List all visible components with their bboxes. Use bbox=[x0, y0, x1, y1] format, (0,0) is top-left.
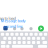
button[interactable]: Key bbox=[44, 33, 47, 36]
button[interactable]: Key bbox=[22, 41, 26, 44]
button[interactable]: Delete bbox=[42, 41, 47, 44]
button[interactable]: Key bbox=[18, 37, 21, 40]
button[interactable]: Key bbox=[15, 33, 18, 36]
button[interactable]: Key bbox=[25, 33, 28, 36]
button[interactable]: Camera bbox=[13, 27, 16, 30]
button[interactable]: Key bbox=[22, 37, 26, 40]
button[interactable]: Numbers bbox=[1, 45, 5, 48]
button[interactable]: Key bbox=[39, 33, 42, 36]
button[interactable]: Key bbox=[8, 41, 11, 44]
button[interactable]: Key bbox=[13, 37, 16, 40]
button[interactable]: Send bbox=[38, 25, 44, 31]
button[interactable]: Key bbox=[18, 41, 21, 44]
staticText: second line bbox=[3, 23, 22, 29]
button[interactable]: Key bbox=[41, 37, 45, 40]
button[interactable]: Key bbox=[32, 37, 35, 40]
button[interactable]: Apps bbox=[3, 26, 8, 30]
button[interactable]: Key bbox=[29, 33, 33, 36]
staticText: Tap to load bbox=[0, 15, 15, 21]
button[interactable]: Space bbox=[12, 45, 33, 48]
button[interactable]: Photos bbox=[20, 27, 24, 30]
button[interactable]: Key bbox=[37, 37, 40, 40]
button[interactable]: Key bbox=[27, 37, 30, 40]
button[interactable]: Emoji bbox=[6, 45, 9, 48]
staticText: Message body bbox=[0, 18, 25, 23]
button[interactable]: Key bbox=[10, 33, 14, 36]
button[interactable]: Shift bbox=[1, 41, 5, 44]
button[interactable]: Key bbox=[3, 37, 7, 40]
button[interactable]: Key bbox=[27, 41, 30, 44]
button[interactable]: More bbox=[29, 27, 33, 30]
button[interactable]: Return bbox=[38, 45, 47, 48]
button[interactable]: Key bbox=[8, 37, 11, 40]
button[interactable]: Key bbox=[20, 33, 23, 36]
button[interactable]: Key bbox=[1, 33, 4, 36]
button[interactable]: Key bbox=[6, 33, 9, 36]
button[interactable]: Key bbox=[34, 33, 38, 36]
